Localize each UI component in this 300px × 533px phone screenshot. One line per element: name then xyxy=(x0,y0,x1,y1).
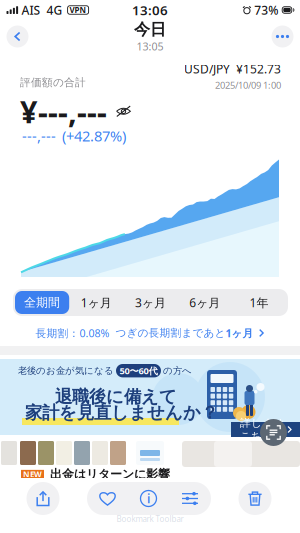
staticText: 73% xyxy=(254,2,278,18)
staticText: AIS xyxy=(22,2,41,18)
button[interactable]: 老後のお金が気になる xyxy=(0,359,300,435)
staticText: 4G xyxy=(47,2,63,18)
button[interactable]: 戻る xyxy=(6,25,28,47)
staticText: ---,--- xyxy=(22,126,56,145)
staticText: USD/JPY ¥152.73 xyxy=(184,61,281,77)
button[interactable]: 削除 xyxy=(238,482,271,515)
staticText: 長期割：0.08% xyxy=(35,326,109,340)
button[interactable]: お気に入り xyxy=(87,482,128,515)
button[interactable]: 表示設定 xyxy=(169,482,211,515)
staticText: 出金はリターンに影響 xyxy=(50,467,170,482)
staticText: 老後のお金が気になる xyxy=(18,365,114,376)
staticText: 13:05 xyxy=(136,39,163,53)
button[interactable]: 全期間 xyxy=(15,291,69,314)
staticText: 6ヶ月 xyxy=(189,294,220,310)
staticText: 1年 xyxy=(249,294,268,310)
staticText: Bookmark Toolbar xyxy=(116,514,183,524)
staticText: 評価額の合計 xyxy=(20,76,86,89)
staticText: NEW xyxy=(23,469,42,480)
button[interactable]: 詳しくはこちら xyxy=(231,422,300,437)
button[interactable]: 長期割：0.08% xyxy=(0,326,300,340)
staticText: 今日 xyxy=(134,20,166,39)
button[interactable]: 3ヶ月 xyxy=(123,291,178,314)
staticText: 50〜60代 xyxy=(119,364,157,377)
button[interactable]: 情報 xyxy=(128,482,169,515)
staticText: 詳しくはこちら xyxy=(240,416,284,443)
staticText: 13:06 xyxy=(132,1,168,19)
button[interactable]: 共有 xyxy=(26,482,59,515)
staticText: 全期間 xyxy=(24,295,60,310)
button[interactable]: メニュー xyxy=(271,25,293,47)
staticText: (+42.87%) xyxy=(62,126,126,145)
staticText: 2025/10/09 1:00 xyxy=(215,79,281,91)
staticText: 1ヶ月 xyxy=(225,326,253,340)
staticText: 退職後に備えて xyxy=(55,386,177,407)
staticText: つぎの長期割まであと xyxy=(109,326,225,339)
staticText: 1ヶ月 xyxy=(81,294,112,310)
staticText: 家計を見直しませんか？ xyxy=(25,402,218,423)
staticText: 3ヶ月 xyxy=(135,294,166,310)
staticText: ¥---,--- xyxy=(20,91,107,132)
button[interactable]: 6ヶ月 xyxy=(178,291,232,314)
button[interactable]: スキャン xyxy=(260,419,287,446)
button[interactable]: 1ヶ月 xyxy=(69,291,123,314)
staticText: i xyxy=(147,490,150,506)
staticText: の方へ xyxy=(163,365,192,376)
button[interactable]: 1年 xyxy=(232,291,286,314)
staticText: VPN xyxy=(70,5,87,15)
